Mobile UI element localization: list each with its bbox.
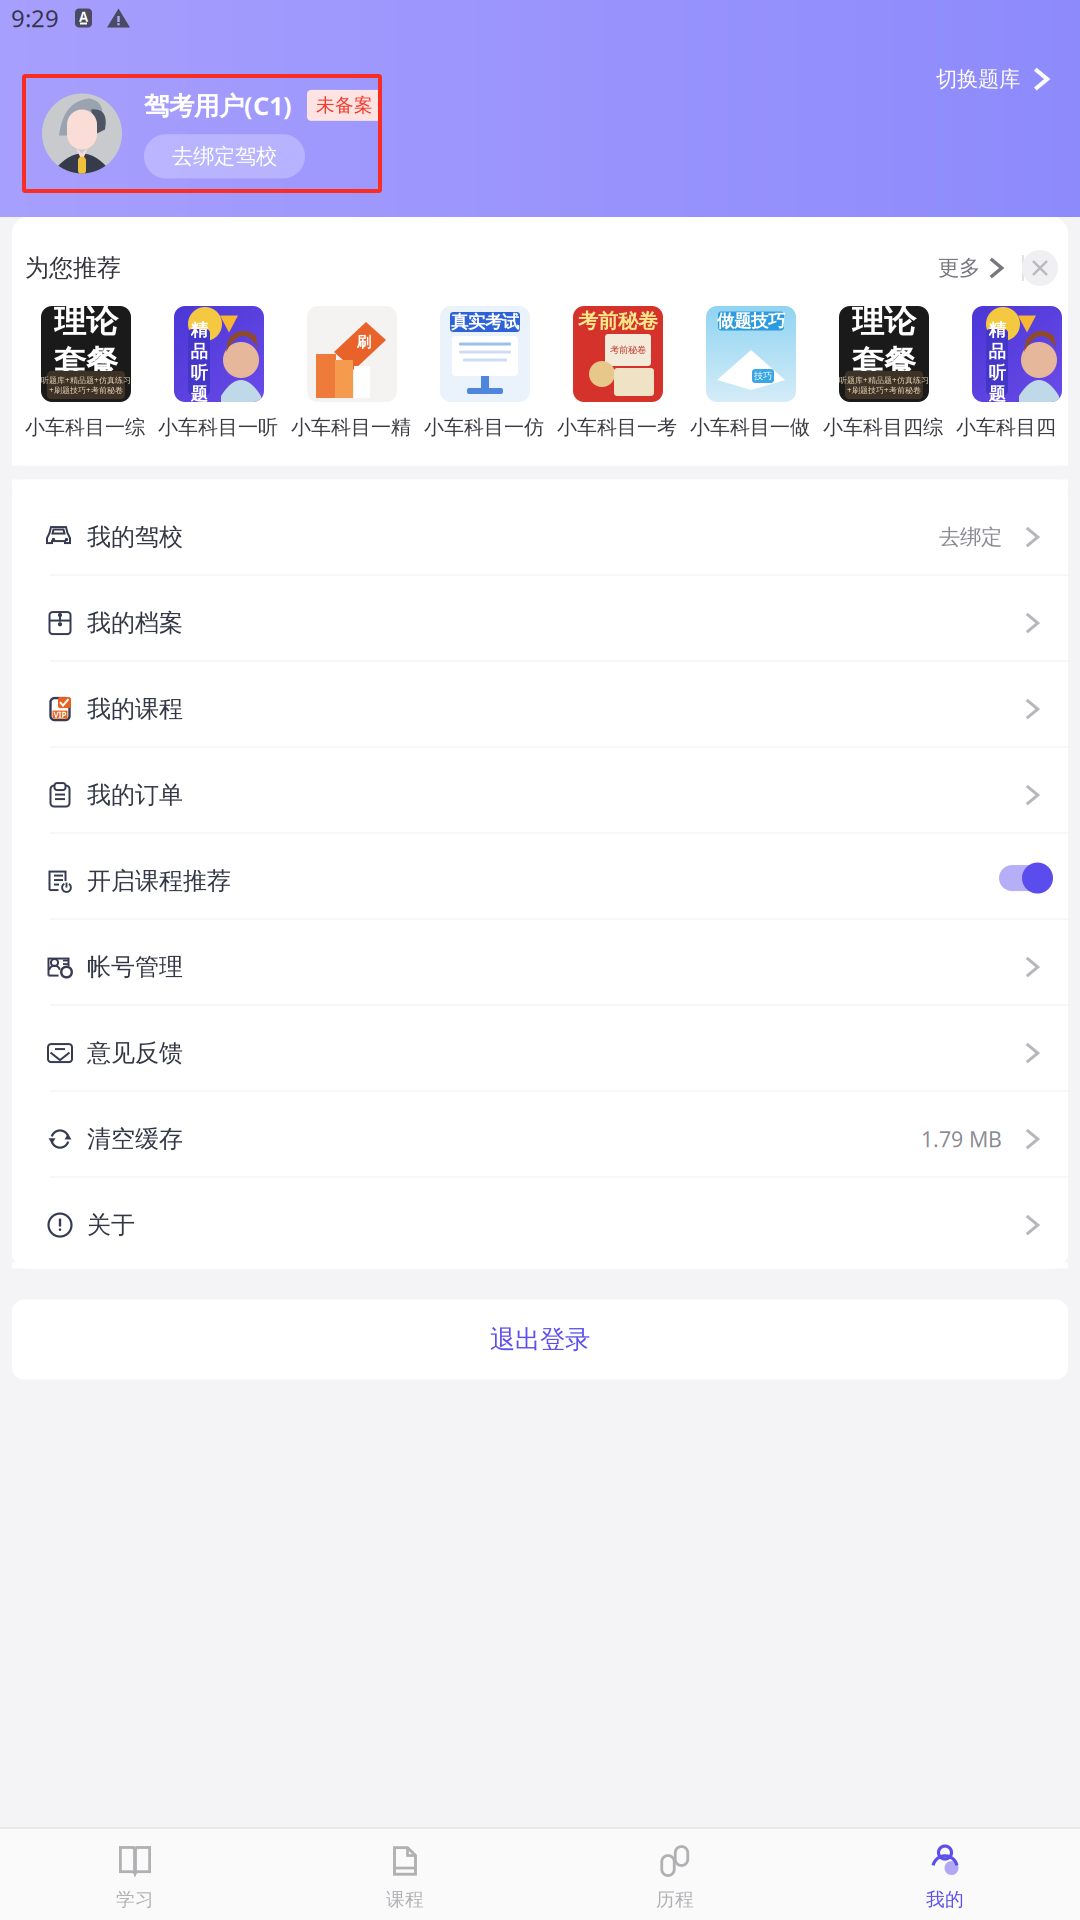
staticText: 学习 xyxy=(116,1888,154,1911)
button[interactable]: 驾考用户(C1) xyxy=(24,76,380,191)
staticText: 小车科目一仿 xyxy=(424,415,544,440)
button[interactable]: 关闭推荐 xyxy=(1022,250,1058,286)
staticText: 小车科目一精 xyxy=(291,415,411,440)
staticText: 课程 xyxy=(386,1888,424,1911)
button[interactable]: 我的驾校 xyxy=(12,490,1068,575)
staticText: 我的订单 xyxy=(87,780,183,810)
staticText: 技巧 xyxy=(754,370,772,382)
staticText: 9:29 xyxy=(11,2,59,34)
button[interactable]: 我的档案 xyxy=(12,576,1068,661)
staticText: 我的档案 xyxy=(87,608,183,638)
staticText: 小车科目四综 xyxy=(823,415,943,440)
staticText: 刷 xyxy=(356,333,371,351)
staticText: 真实考试 xyxy=(451,311,519,333)
button[interactable]: 历程 xyxy=(540,1829,810,1920)
staticText: 1.79 MB xyxy=(921,1125,1002,1153)
staticText: 听题库+精品题+仿真练习 xyxy=(839,375,929,385)
staticText: A xyxy=(79,8,88,25)
button[interactable]: 我的订单 xyxy=(12,748,1068,833)
button[interactable]: 课程 xyxy=(270,1829,540,1920)
staticText: 做题技巧 xyxy=(717,310,785,332)
staticText: 品 xyxy=(988,341,1005,362)
staticText: 精 xyxy=(988,319,1005,341)
staticText: +刷题技巧+考前秘卷 xyxy=(49,385,123,395)
staticText: 我的课程 xyxy=(87,694,183,724)
staticText: +刷题技巧+考前秘卷 xyxy=(847,385,921,395)
staticText: 听 xyxy=(190,362,207,383)
staticText: 题 xyxy=(190,383,207,405)
staticText: 套餐 xyxy=(852,343,916,382)
staticText: 切换题库 xyxy=(936,66,1020,92)
button[interactable]: 帐号管理 xyxy=(12,920,1068,1005)
staticText: 帐号管理 xyxy=(87,952,183,982)
staticText: 听 xyxy=(988,362,1005,383)
staticText: 小车科目一做 xyxy=(690,415,810,440)
staticText: 驾考用户(C1) xyxy=(144,89,292,122)
button[interactable]: VIP xyxy=(12,662,1068,747)
button[interactable]: 真实考试 xyxy=(424,306,548,440)
button[interactable]: 理论 xyxy=(25,306,149,440)
button[interactable]: 切换题库 xyxy=(926,60,1064,98)
staticText: 退出登录 xyxy=(490,1324,590,1355)
button[interactable]: 精 xyxy=(158,306,282,440)
staticText: 意见反馈 xyxy=(87,1038,183,1068)
staticText: 清空缓存 xyxy=(87,1124,183,1154)
staticText: 理论 xyxy=(852,302,916,341)
staticText: 关于 xyxy=(87,1210,135,1240)
button[interactable]: 开启课程推荐 xyxy=(12,834,1068,919)
staticText: 小车科目四 xyxy=(956,415,1056,440)
button[interactable]: 考前秘卷 xyxy=(557,306,681,440)
button[interactable]: 精 xyxy=(956,306,1080,440)
staticText: 小车科目一考 xyxy=(557,415,677,440)
staticText: 品 xyxy=(190,341,207,362)
staticText: VIP xyxy=(53,709,66,720)
button[interactable]: 关于 xyxy=(12,1178,1068,1263)
staticText: 历程 xyxy=(656,1888,694,1911)
button[interactable]: 学习 xyxy=(0,1829,270,1920)
staticText: 考前秘卷 xyxy=(578,309,658,333)
staticText: 更多 xyxy=(938,255,980,281)
staticText: 精 xyxy=(190,319,207,341)
button[interactable]: 我的 xyxy=(810,1829,1080,1920)
staticText: 理论 xyxy=(54,302,118,341)
staticText: 小车科目一听 xyxy=(158,415,278,440)
staticText: 我的驾校 xyxy=(87,522,183,552)
button[interactable]: 刷 xyxy=(291,306,415,440)
staticText: 听题库+精品题+仿真练习 xyxy=(41,375,131,385)
button[interactable]: 理论 xyxy=(823,306,947,440)
staticText: 未备案 xyxy=(316,94,373,117)
staticText: 去绑定 xyxy=(939,524,1002,550)
button[interactable]: 清空缓存 xyxy=(12,1092,1068,1177)
button[interactable]: 更多 xyxy=(938,255,1008,281)
button[interactable]: 做题技巧 xyxy=(690,306,814,440)
button[interactable]: 意见反馈 xyxy=(12,1006,1068,1091)
staticText: 套餐 xyxy=(54,343,118,382)
staticText: 去绑定驾校 xyxy=(172,143,277,169)
staticText: 考前秘卷 xyxy=(610,344,646,356)
staticText: 题 xyxy=(988,383,1005,405)
staticText: 为您推荐 xyxy=(25,253,121,283)
staticText: 小车科目一综 xyxy=(25,415,145,440)
staticText: 开启课程推荐 xyxy=(87,866,231,896)
staticText: 我的 xyxy=(926,1888,964,1911)
button[interactable]: 退出登录 xyxy=(12,1300,1068,1380)
